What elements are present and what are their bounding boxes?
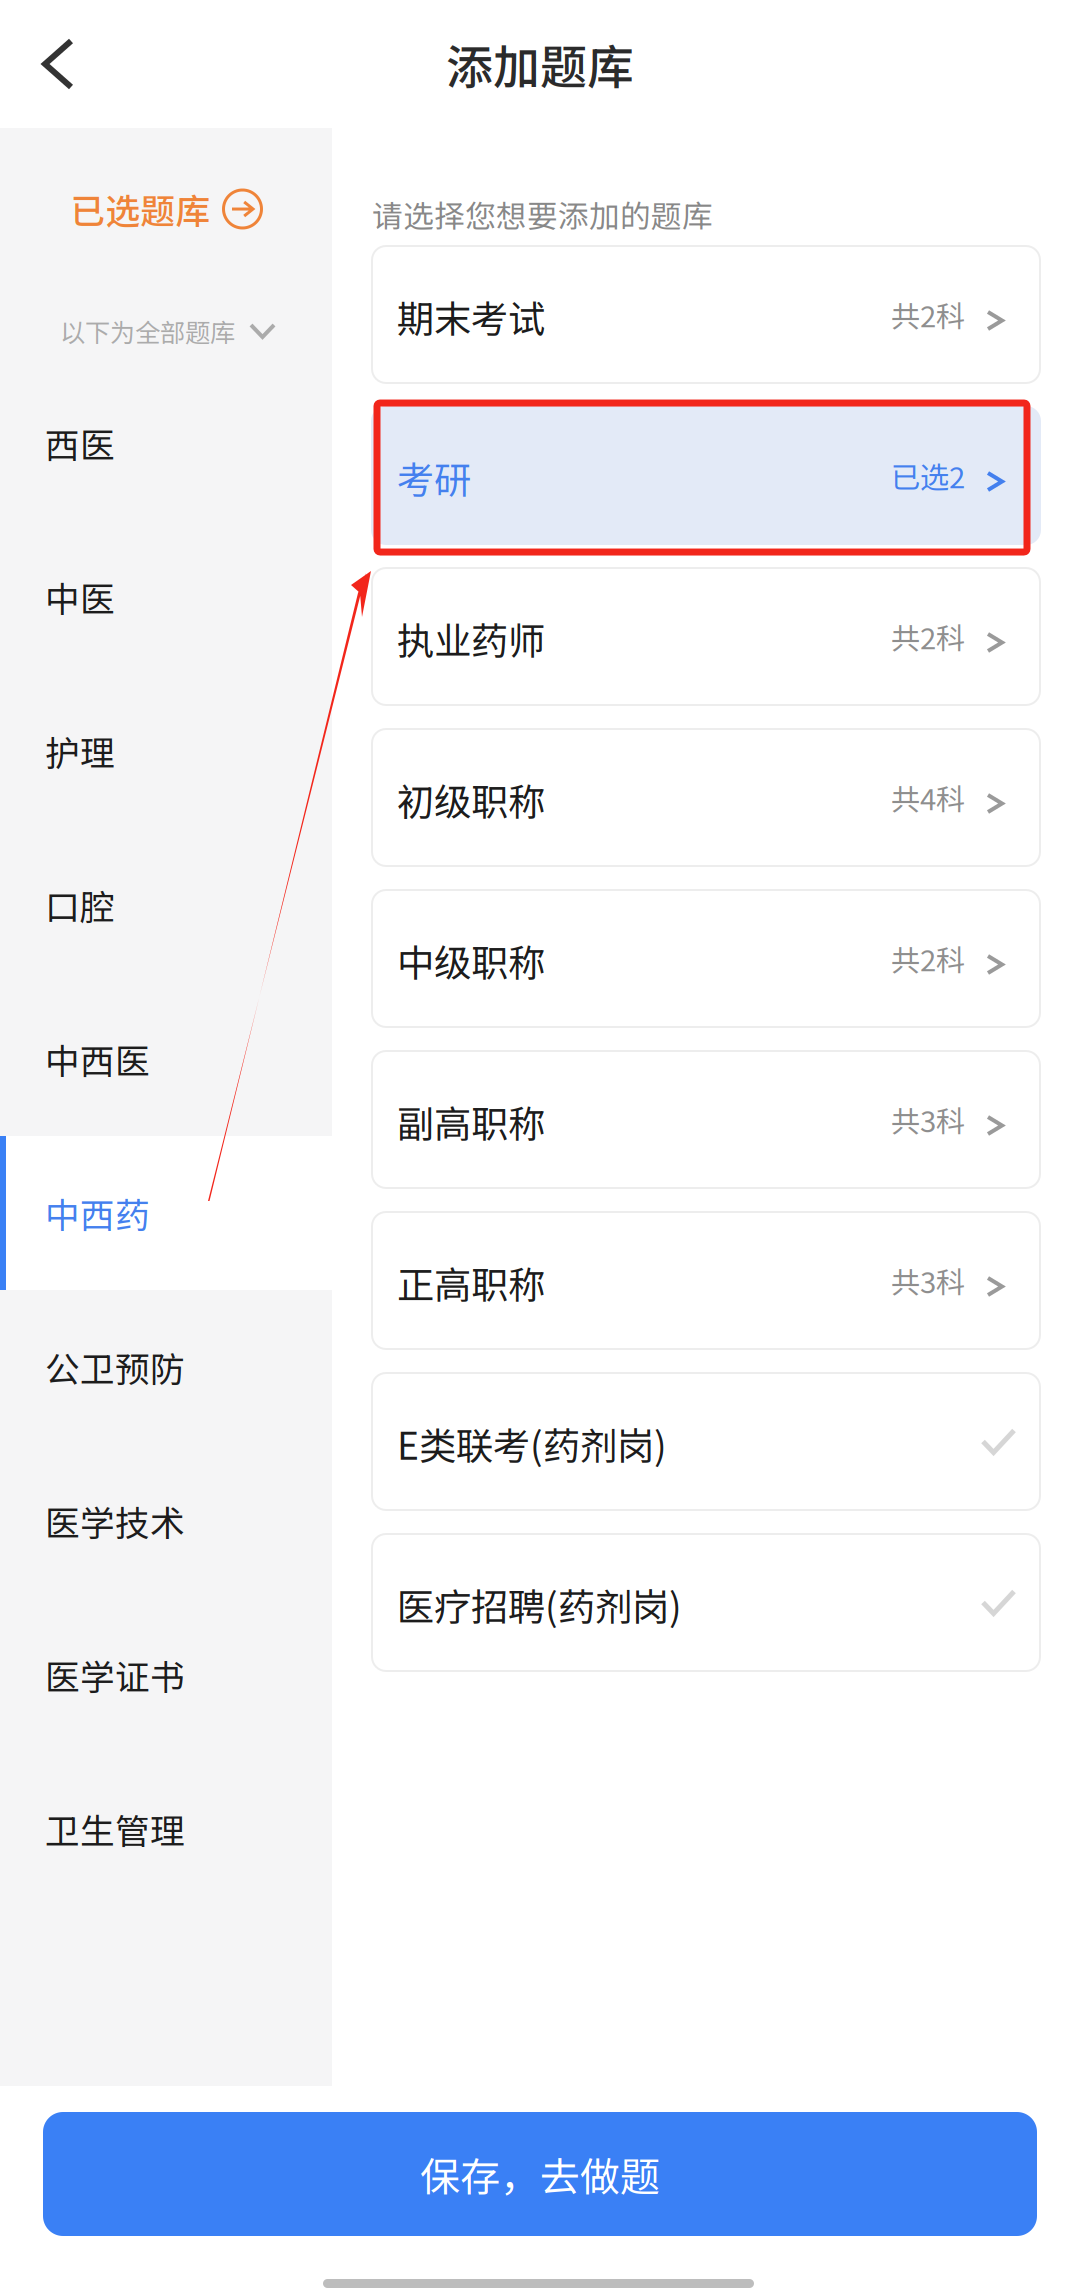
- button[interactable]: 卫生管理: [0, 1752, 332, 1906]
- staticText: 共2科: [891, 293, 965, 336]
- button[interactable]: 西医: [0, 366, 332, 520]
- staticText: 医疗招聘(药剂岗): [397, 1577, 682, 1632]
- staticText: 中医: [45, 572, 115, 622]
- button[interactable]: 中西药: [0, 1136, 332, 1290]
- staticText: 医学技术: [45, 1496, 185, 1546]
- button[interactable]: 公卫预防: [0, 1290, 332, 1444]
- staticText: 共2科: [891, 615, 965, 658]
- staticText: 初级职称: [397, 772, 545, 827]
- button[interactable]: 医疗招聘(药剂岗): [372, 1534, 1040, 1671]
- staticText: 正高职称: [397, 1255, 545, 1310]
- staticText: 共3科: [891, 1259, 965, 1302]
- button[interactable]: 期末考试: [372, 246, 1040, 383]
- button[interactable]: 护理: [0, 674, 332, 828]
- button[interactable]: 医学技术: [0, 1444, 332, 1598]
- button[interactable]: 已选题库: [0, 166, 332, 252]
- button[interactable]: 口腔: [0, 828, 332, 982]
- button[interactable]: 考研: [372, 407, 1040, 544]
- staticText: 共4科: [891, 776, 965, 819]
- button[interactable]: 执业药师: [372, 568, 1040, 705]
- staticText: 护理: [45, 726, 115, 776]
- staticText: 考研: [397, 450, 471, 505]
- button[interactable]: 中级职称: [372, 890, 1040, 1027]
- staticText: 已选2: [891, 454, 965, 497]
- staticText: 公卫预防: [45, 1342, 185, 1392]
- staticText: 副高职称: [397, 1094, 545, 1149]
- staticText: 执业药师: [397, 611, 545, 666]
- staticText: 以下为全部题库: [60, 313, 235, 349]
- button[interactable]: 保存，去做题: [43, 2112, 1037, 2236]
- staticText: 中西医: [45, 1034, 150, 1084]
- button[interactable]: 医学证书: [0, 1598, 332, 1752]
- button[interactable]: 中西医: [0, 982, 332, 1136]
- staticText: 添加题库: [446, 30, 634, 98]
- button[interactable]: Back: [0, 3, 111, 125]
- button[interactable]: 副高职称: [372, 1051, 1040, 1188]
- button[interactable]: 以下为全部题库: [0, 294, 332, 368]
- staticText: 医学证书: [45, 1650, 185, 1700]
- staticText: 共3科: [891, 1098, 965, 1141]
- staticText: 请选择您想要添加的题库: [372, 192, 713, 236]
- button[interactable]: 中医: [0, 520, 332, 674]
- staticText: 卫生管理: [45, 1804, 185, 1854]
- staticText: E类联考(药剂岗): [397, 1416, 667, 1471]
- staticText: 口腔: [45, 880, 115, 930]
- staticText: 期末考试: [397, 289, 545, 344]
- button[interactable]: 初级职称: [372, 729, 1040, 866]
- staticText: 共2科: [891, 937, 965, 980]
- staticText: 中级职称: [397, 933, 545, 988]
- button[interactable]: E类联考(药剂岗): [372, 1373, 1040, 1510]
- staticText: 已选题库: [70, 184, 210, 234]
- staticText: 保存，去做题: [420, 2145, 660, 2203]
- staticText: 西医: [45, 418, 115, 468]
- staticText: 中西药: [45, 1188, 150, 1238]
- button[interactable]: 正高职称: [372, 1212, 1040, 1349]
